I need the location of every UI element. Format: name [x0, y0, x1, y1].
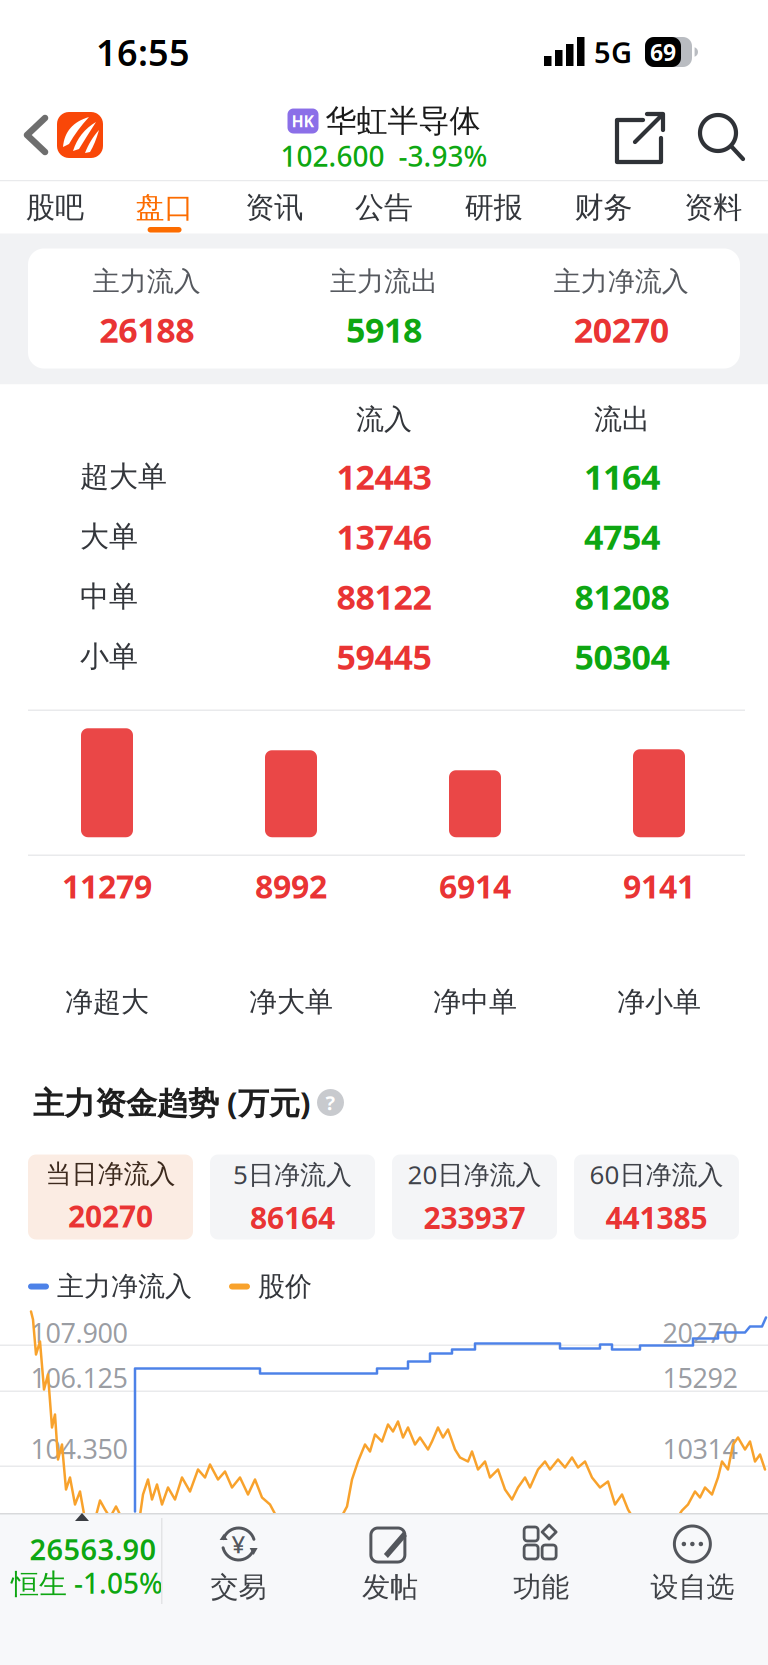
staticText: 净小单 — [617, 985, 701, 1019]
button[interactable]: 资讯 — [219, 181, 329, 233]
button[interactable] — [603, 100, 675, 174]
button[interactable]: 发帖 — [314, 1523, 465, 1604]
staticText: 20日净流入 — [407, 1157, 541, 1191]
staticText: 8992 — [255, 865, 327, 907]
staticText: 81208 — [574, 574, 669, 619]
staticText: 主力资金趋势 (万元) — [33, 1082, 311, 1123]
staticText: 20270 — [574, 307, 669, 352]
staticText: 5日净流入 — [233, 1157, 352, 1191]
button[interactable]: 功能 — [465, 1523, 617, 1604]
button[interactable]: 资料 — [658, 181, 768, 233]
staticText: 60日净流入 — [589, 1157, 723, 1191]
staticText: 设自选 — [650, 1570, 734, 1604]
staticText: 15292 — [662, 1360, 737, 1395]
button[interactable]: 60日净流入 — [574, 1154, 739, 1239]
staticText: 107.900 — [30, 1315, 127, 1350]
staticText: 1164 — [584, 454, 660, 499]
staticText: 59445 — [336, 634, 431, 679]
staticText: 106.125 — [30, 1360, 127, 1395]
button[interactable]: 当日净流入 — [28, 1154, 193, 1239]
staticText: 净大单 — [249, 985, 333, 1019]
staticText: 净超大 — [65, 985, 149, 1019]
staticText: 26188 — [99, 307, 194, 352]
staticText: ¥ — [232, 1528, 246, 1560]
staticText: 20270 — [68, 1196, 153, 1236]
staticText: 主力净流入 — [554, 265, 689, 298]
staticText: 股吧 — [26, 190, 84, 225]
staticText: 13746 — [336, 514, 431, 559]
staticText: 流入 — [356, 402, 412, 437]
staticText: 10314 — [662, 1431, 737, 1466]
staticText: 当日净流入 — [45, 1158, 175, 1190]
staticText: 主力净流入 — [57, 1270, 192, 1303]
staticText: 恒生 -1.05% — [11, 1564, 163, 1602]
staticText: 11279 — [62, 865, 152, 907]
staticText: 净中单 — [433, 985, 517, 1019]
staticText: 6914 — [439, 865, 511, 907]
button[interactable]: 20日净流入 — [392, 1154, 557, 1239]
staticText: 资料 — [684, 190, 742, 225]
staticText: 公告 — [355, 190, 413, 225]
button[interactable] — [0, 85, 60, 180]
staticText: 441385 — [605, 1197, 707, 1237]
staticText: 88122 — [336, 574, 431, 619]
button[interactable]: 26563.90 — [0, 1513, 161, 1665]
staticText: 5G — [594, 33, 632, 71]
button[interactable]: 设自选 — [617, 1523, 768, 1604]
staticText: 流出 — [594, 402, 650, 437]
button[interactable]: ¥ — [163, 1523, 314, 1604]
staticText: 104.350 — [30, 1431, 127, 1466]
staticText: 102.600 -3.93% — [280, 137, 487, 175]
staticText: 50304 — [574, 634, 669, 679]
staticText: 中单 — [80, 579, 138, 614]
button[interactable]: ? — [311, 1089, 344, 1116]
staticText: 盘口 — [136, 190, 194, 225]
button[interactable]: 财务 — [549, 181, 658, 233]
staticText: 12443 — [336, 454, 431, 499]
staticText: 5918 — [346, 307, 422, 352]
staticText: HK — [291, 110, 314, 132]
button[interactable]: 盘口 — [110, 181, 219, 233]
staticText: 主力流入 — [93, 265, 201, 298]
staticText: 股价 — [258, 1270, 312, 1303]
staticText: 研报 — [465, 190, 523, 225]
button[interactable]: 研报 — [439, 181, 549, 233]
button[interactable]: 5日净流入 — [210, 1154, 375, 1239]
button[interactable]: 公告 — [329, 181, 439, 233]
staticText: 233937 — [423, 1197, 525, 1237]
staticText: 主力流出 — [330, 265, 438, 298]
staticText: 发帖 — [362, 1570, 418, 1604]
staticText: 16:55 — [96, 28, 190, 76]
staticText: 69 — [650, 37, 676, 67]
staticText: 超大单 — [80, 459, 167, 494]
button[interactable] — [686, 101, 756, 173]
staticText: 小单 — [80, 639, 138, 674]
staticText: 26563.90 — [29, 1530, 156, 1568]
staticText: 交易 — [211, 1570, 267, 1604]
staticText: 9141 — [623, 865, 695, 907]
staticText: 20270 — [662, 1315, 737, 1350]
staticText: 4754 — [584, 514, 660, 559]
staticText: 功能 — [513, 1570, 569, 1604]
button[interactable]: 股吧 — [0, 181, 110, 233]
staticText: 资讯 — [245, 190, 303, 225]
staticText: ? — [325, 1089, 335, 1116]
staticText: 86164 — [250, 1197, 335, 1237]
staticText: 财务 — [574, 190, 632, 225]
staticText: 华虹半导体 — [325, 102, 480, 140]
staticText: 大单 — [80, 519, 138, 554]
